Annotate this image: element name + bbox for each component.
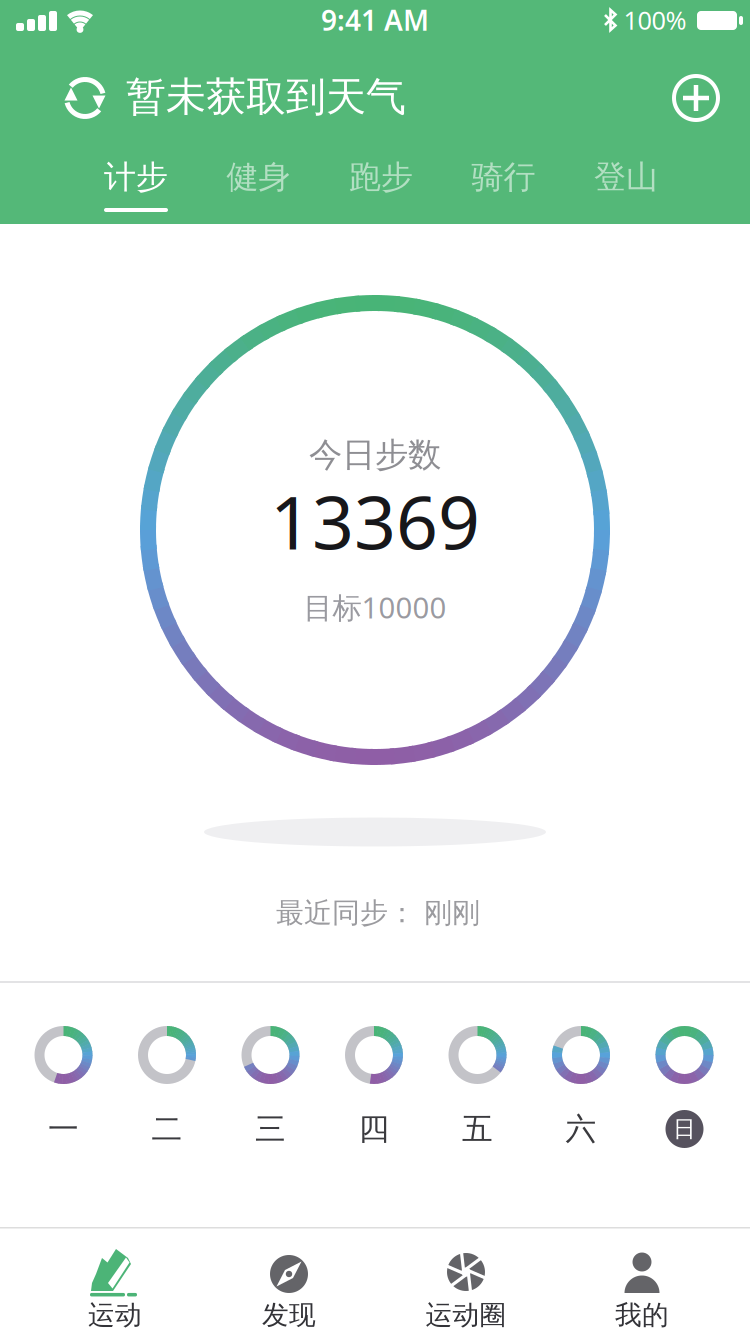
staticText: 100% [623,3,686,37]
button[interactable]: 我的 [610,1236,674,1324]
button[interactable]: 跑步 [349,157,413,197]
button[interactable]: 计步 [104,157,168,197]
staticText: 四 [358,1110,389,1148]
staticText: 运动 [88,1299,142,1331]
button[interactable]: 登山 [594,157,658,197]
staticText: 三 [255,1110,286,1148]
staticText: 日 [673,1115,696,1143]
staticText: 9:41 AM [321,1,429,39]
staticText: 发现 [262,1299,316,1331]
staticText: 运动圈 [425,1299,506,1331]
button[interactable]: 运动圈 [434,1236,498,1324]
staticText: 我的 [615,1299,669,1331]
staticText: 跑步 [349,157,413,197]
button[interactable]: 骑行 [471,157,535,197]
staticText: 13369 [270,472,480,570]
button[interactable]: 发现 [257,1236,321,1324]
staticText: 二 [151,1110,182,1148]
staticText: 计步 [104,157,168,197]
staticText: 六 [565,1110,596,1148]
staticText: 五 [462,1110,493,1148]
staticText: 最近同步： 刚刚 [276,896,480,930]
button[interactable]: 健身 [226,157,290,197]
staticText: 目标10000 [303,587,446,626]
staticText: 健身 [226,157,290,197]
staticText: 今日步数 [309,434,441,475]
staticText: 一 [48,1110,79,1148]
staticText: 暂未获取到天气 [126,72,406,121]
button[interactable] [668,70,724,126]
button[interactable] [53,66,117,130]
staticText: 登山 [594,157,658,197]
staticText: 骑行 [471,157,535,197]
button[interactable]: 运动 [83,1236,147,1324]
